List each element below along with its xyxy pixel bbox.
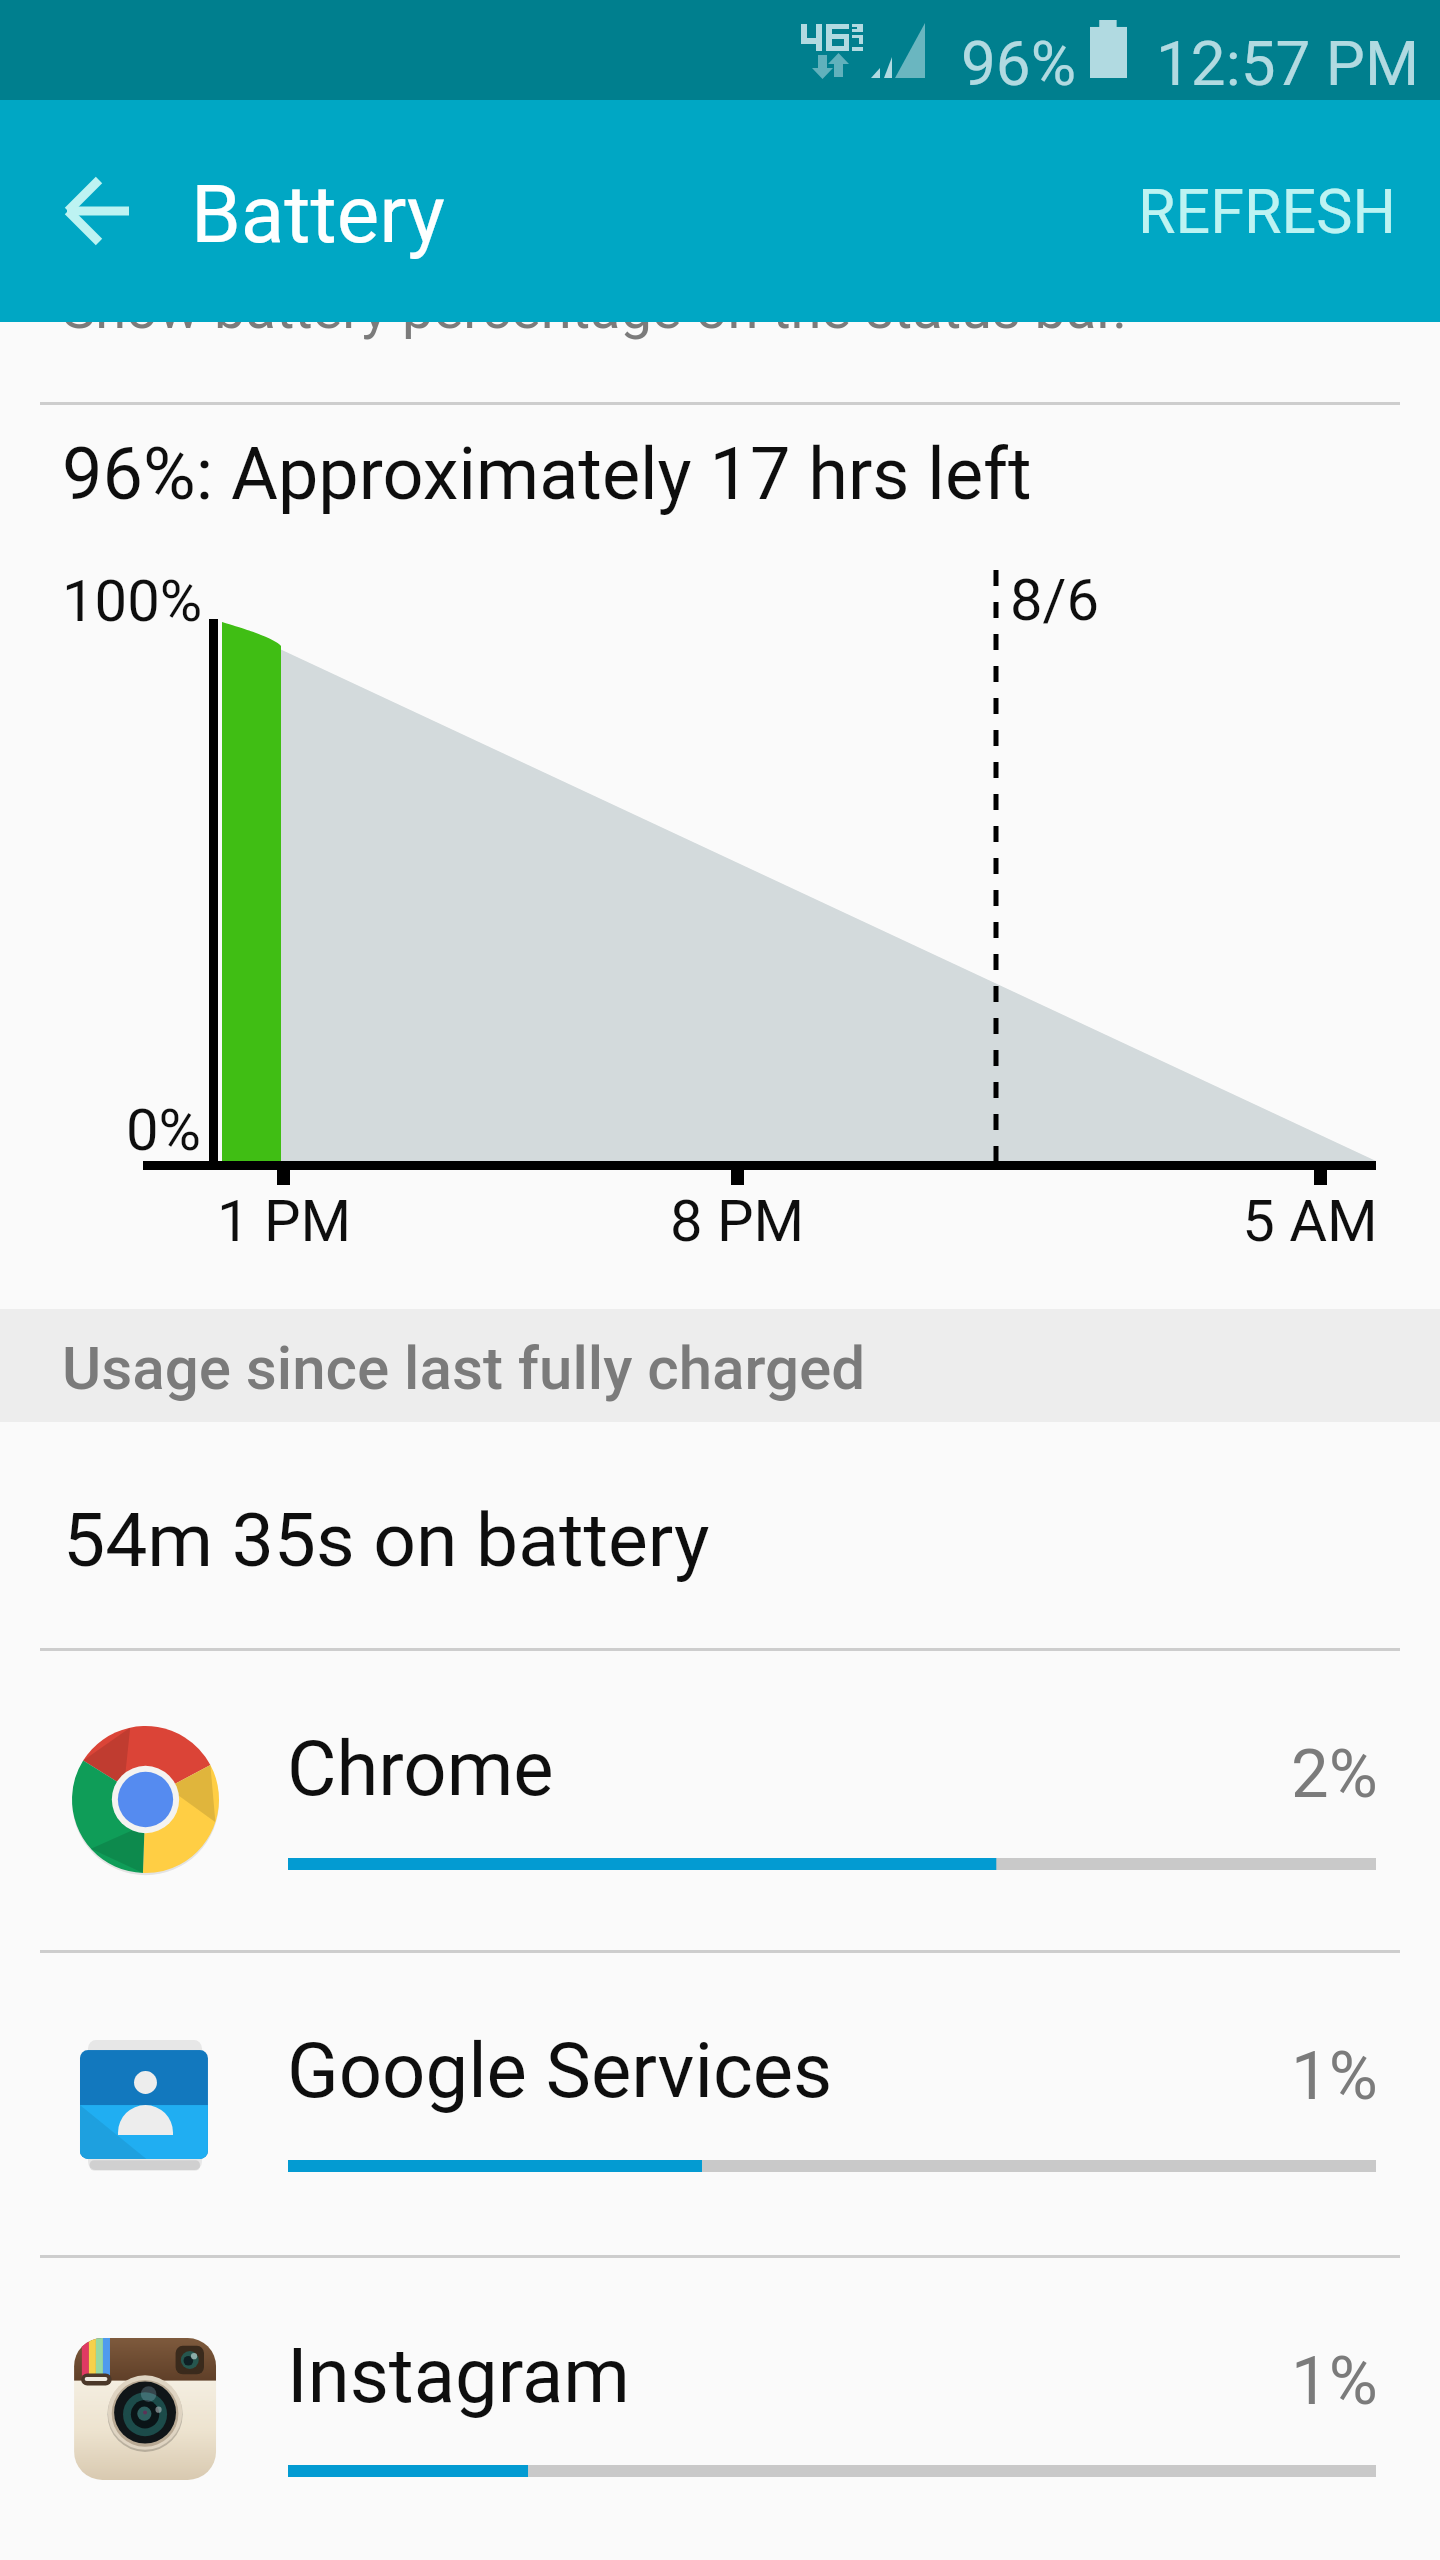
staticText: Chrome [287, 1724, 554, 1813]
staticText: 5 AM [1150, 1187, 1440, 1255]
staticText: REFRESH [1138, 176, 1396, 247]
staticText: 0% [126, 1096, 202, 1164]
staticText: 96%: Approximately 17 hrs left [62, 432, 1032, 516]
staticText: 2% [1291, 1735, 1378, 1814]
staticText: 1 PM [124, 1187, 444, 1255]
staticText: 1% [1291, 2037, 1378, 2116]
staticText: Usage since last fully charged [62, 1333, 866, 1403]
staticText: 1% [1291, 2342, 1378, 2421]
staticText: Show battery percentage on the status ba… [62, 276, 1127, 342]
other: Battery level history chart [0, 560, 1440, 1280]
button[interactable]: REFRESH [1094, 126, 1440, 297]
button[interactable]: Google Services [0, 1952, 1440, 2254]
staticText: 100% [62, 567, 203, 635]
staticText: 8 PM [577, 1187, 897, 1255]
button[interactable]: Chrome [0, 1650, 1440, 1952]
staticText: Google Services [287, 2026, 833, 2115]
staticText: 8/6 [1010, 566, 1100, 634]
staticText: 54m 35s on battery [63, 1496, 710, 1584]
button[interactable]: Navigate up [21, 136, 171, 286]
staticText: Instagram [287, 2331, 631, 2420]
button[interactable]: Instagram [0, 2257, 1440, 2559]
staticText: Battery [191, 168, 445, 262]
staticText: 96% [961, 27, 1077, 100]
staticText: 12:57 PM [1156, 27, 1420, 100]
